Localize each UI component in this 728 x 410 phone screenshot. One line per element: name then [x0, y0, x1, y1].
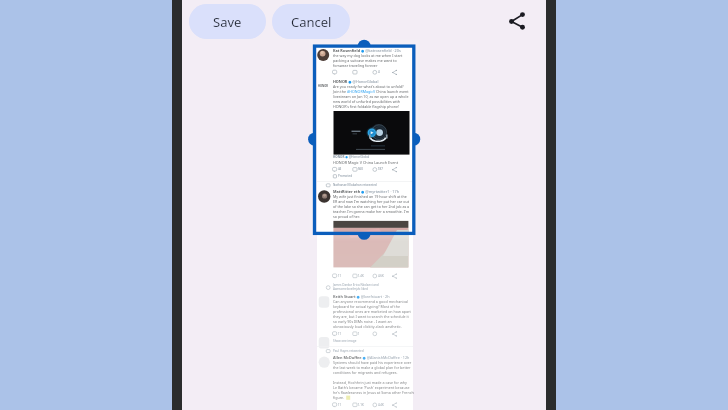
- staticText: 1: [358, 332, 360, 336]
- staticText: livestream on Jan 10, as we open up a wh…: [333, 94, 409, 99]
- staticText: teacher. I'm gonna make her a smoothie. …: [333, 209, 410, 214]
- staticText: 187: [378, 167, 383, 171]
- staticText: Save: [213, 13, 242, 31]
- staticText: the last week to make a global plan for …: [333, 365, 411, 370]
- staticText: forswear traveling forever: [333, 63, 378, 68]
- staticText: 4: [378, 70, 380, 74]
- staticText: the way my dog looks at me when I start: [333, 53, 403, 58]
- staticText: Allen McDuffee ● @AlanishMcDaffee · 12h: [333, 355, 410, 360]
- staticText: Join the #HONORMagicV China launch event: [333, 89, 409, 94]
- staticText: professional ones are marketed on how ap…: [333, 309, 411, 314]
- staticText: Kat Rosenfield ● @katrosenfield · 20s: [333, 48, 401, 53]
- staticText: Cancel: [291, 13, 332, 31]
- staticText: Nathanael Klabahan retweeted: [333, 183, 377, 187]
- staticText: 44: [338, 167, 342, 171]
- staticText: 4.4K: [378, 403, 384, 407]
- staticText: Keith Stuart ● @keefstuart · 2h: [333, 294, 390, 299]
- staticText: HONOR Magic V China Launch Event: [333, 160, 398, 165]
- staticText: Promoted: [338, 174, 353, 178]
- staticText: HONOR's first foldable flagship phone!: [333, 104, 399, 109]
- staticText: he's flawlessness in Jesus at Soma other…: [333, 390, 414, 395]
- staticText: 11: [338, 403, 342, 407]
- staticText: obnoxiously loud clickity-clack aestheti…: [333, 324, 402, 329]
- staticText: 11: [338, 274, 342, 278]
- staticText: Instead, Hochhrin just made a case for w…: [333, 380, 407, 385]
- staticText: James Dardar Erica Niiolaevi and: [333, 283, 379, 287]
- staticText: HONOR: [318, 84, 328, 88]
- staticText: Can anyone recommend a good mechanical: [333, 299, 409, 304]
- staticText: they are, but I want to search the sched…: [333, 314, 409, 319]
- staticText: MattRitter eth ● @myrtwitter1 · 17h: [333, 189, 399, 194]
- staticText: so proud of her.: [333, 214, 360, 219]
- staticText: HONOR ● @HonorGlobal: [333, 79, 379, 84]
- staticText: 1.1K: [358, 403, 364, 407]
- staticText: of the lake so she can get to her 2nd jo…: [333, 204, 410, 209]
- staticText: My wife just finished an 19 hour shift a…: [333, 194, 407, 199]
- staticText: 11: [338, 332, 342, 336]
- staticText: conditions for migrants and refugees.: [333, 370, 398, 375]
- staticText: HONOR ● @HonorGlobal: [333, 155, 370, 159]
- staticText: figure.: [333, 395, 345, 400]
- staticText: Awesomelovefmjvb liked: [333, 287, 368, 291]
- staticText: ER and now I'm watching her put her car …: [333, 199, 410, 204]
- staticText: Are you ready for what's about to unfold…: [333, 84, 404, 89]
- staticText: 1.4K: [358, 274, 364, 278]
- staticText: Le Bath's became 'Push' experiment becau…: [333, 385, 410, 390]
- staticText: Paul Hayes retweeted: [333, 349, 364, 353]
- staticText: packing a suitcase makes me want to: [333, 58, 397, 63]
- staticText: 560: [358, 167, 363, 171]
- staticText: Show one image: [333, 339, 357, 343]
- staticText: so early 90s IBMs noise - I want an: [333, 319, 392, 324]
- button[interactable]: Share: [500, 4, 534, 38]
- staticText: Systems should have paid his experience …: [333, 360, 412, 365]
- staticText: keyboard for actual typing? Most of the: [333, 304, 400, 309]
- staticText: new world of unfurled possibilities with: [333, 99, 401, 104]
- button[interactable]: Cancel: [272, 4, 350, 39]
- staticText: 4.6K: [378, 274, 384, 278]
- button[interactable]: Save: [189, 4, 266, 39]
